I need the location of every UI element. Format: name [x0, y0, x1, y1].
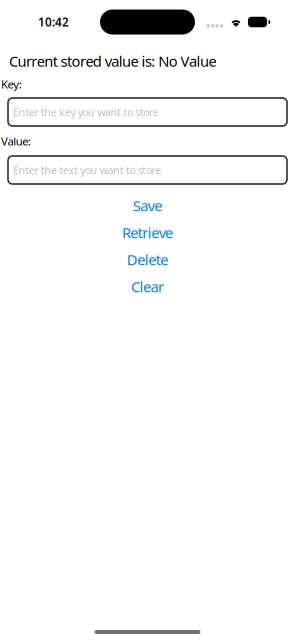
button[interactable]: Retrieve — [0, 219, 295, 246]
staticText: Current stored value is: No Value — [9, 51, 216, 71]
button[interactable]: Delete — [0, 246, 295, 273]
staticText: Retrieve — [122, 222, 173, 242]
staticText: Enter the text you want to store — [13, 163, 161, 177]
staticText: Delete — [127, 249, 168, 269]
staticText: 10:42 — [38, 14, 69, 30]
button[interactable]: Save — [0, 192, 295, 219]
staticText: Clear — [131, 276, 164, 296]
staticText: Save — [133, 195, 162, 215]
staticText: Value: — [1, 133, 31, 149]
button[interactable]: Enter the key you want to store — [8, 98, 287, 126]
staticText: Enter the key you want to store — [13, 105, 159, 119]
button[interactable]: Clear — [0, 273, 295, 300]
staticText: Key: — [1, 76, 22, 92]
button[interactable]: Enter the text you want to store — [8, 156, 287, 184]
